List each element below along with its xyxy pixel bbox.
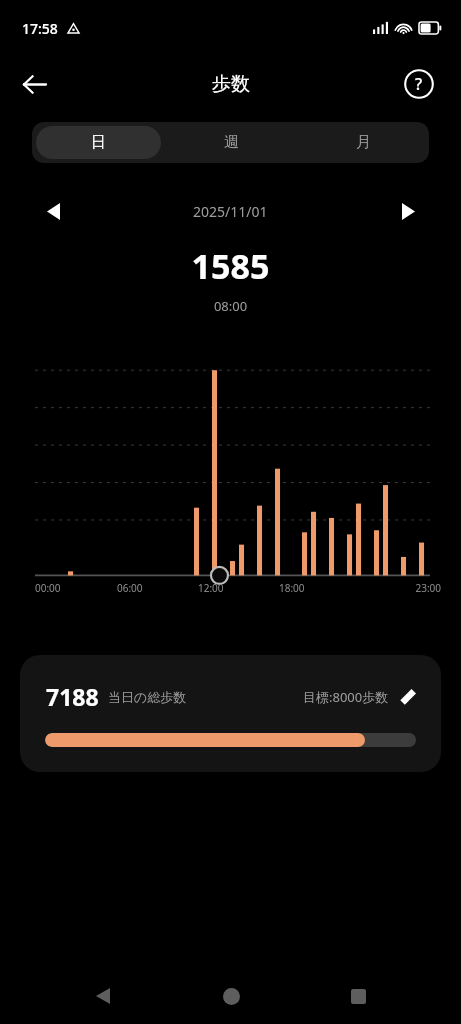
staticText: 1585 — [0, 243, 461, 289]
staticText: 当日の総歩数 — [108, 689, 187, 705]
staticText: 00:00 — [35, 581, 117, 595]
button[interactable]: Home — [207, 972, 255, 1020]
button[interactable]: 日 — [36, 126, 161, 159]
staticText: 月 — [356, 133, 371, 152]
staticText: 歩数 — [212, 72, 250, 96]
staticText: 2025/11/01 — [193, 202, 268, 221]
button[interactable]: Back — [14, 64, 54, 104]
staticText: ? — [415, 73, 423, 95]
button[interactable]: 7188 — [20, 655, 441, 772]
staticText: 08:00 — [0, 297, 461, 315]
button[interactable]: Edit goal — [397, 686, 419, 708]
staticText: 目標:8000歩数 — [303, 688, 389, 706]
button[interactable]: Next day — [391, 194, 425, 228]
button[interactable]: 月 — [301, 126, 425, 159]
staticText: 日 — [91, 133, 106, 152]
button[interactable]: Back — [79, 972, 127, 1020]
staticText: 7188 — [46, 681, 99, 712]
button[interactable]: Previous day — [36, 194, 70, 228]
staticText: 週 — [224, 133, 239, 152]
staticText: 17:58 — [22, 19, 58, 38]
button[interactable]: Recents — [334, 972, 382, 1020]
button[interactable]: Help — [399, 64, 439, 104]
button[interactable]: 週 — [169, 126, 293, 159]
staticText: 12:00 — [198, 581, 279, 595]
staticText: 23:00 — [360, 581, 441, 595]
staticText: 06:00 — [117, 581, 198, 595]
staticText: 18:00 — [279, 581, 360, 595]
